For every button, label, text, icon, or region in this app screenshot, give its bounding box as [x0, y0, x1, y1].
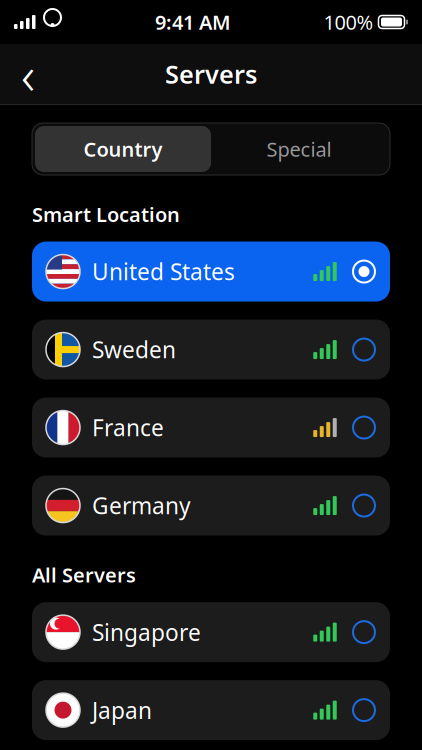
button[interactable]: France: [32, 398, 390, 458]
staticText: ‹: [21, 39, 35, 109]
staticText: Singapore: [92, 617, 201, 647]
button[interactable]: Japan: [32, 680, 390, 740]
staticText: Sweden: [92, 334, 176, 365]
button[interactable]: Country: [35, 126, 211, 172]
staticText: Japan: [92, 695, 152, 725]
button[interactable]: Special: [211, 126, 387, 172]
staticText: 100%: [323, 9, 373, 35]
staticText: France: [92, 412, 164, 443]
button[interactable]: United States: [32, 242, 390, 302]
staticText: Special: [266, 136, 331, 162]
staticText: All Servers: [32, 562, 136, 588]
staticText: 9:41 AM: [155, 9, 231, 35]
button[interactable]: Singapore: [32, 602, 390, 662]
button[interactable]: Back: [6, 52, 50, 96]
button[interactable]: Sweden: [32, 320, 390, 380]
staticText: Smart Location: [32, 201, 180, 228]
staticText: United States: [92, 256, 235, 287]
staticText: Country: [83, 136, 162, 162]
staticText: Germany: [92, 490, 191, 521]
button[interactable]: Germany: [32, 476, 390, 536]
staticText: Servers: [165, 57, 257, 91]
